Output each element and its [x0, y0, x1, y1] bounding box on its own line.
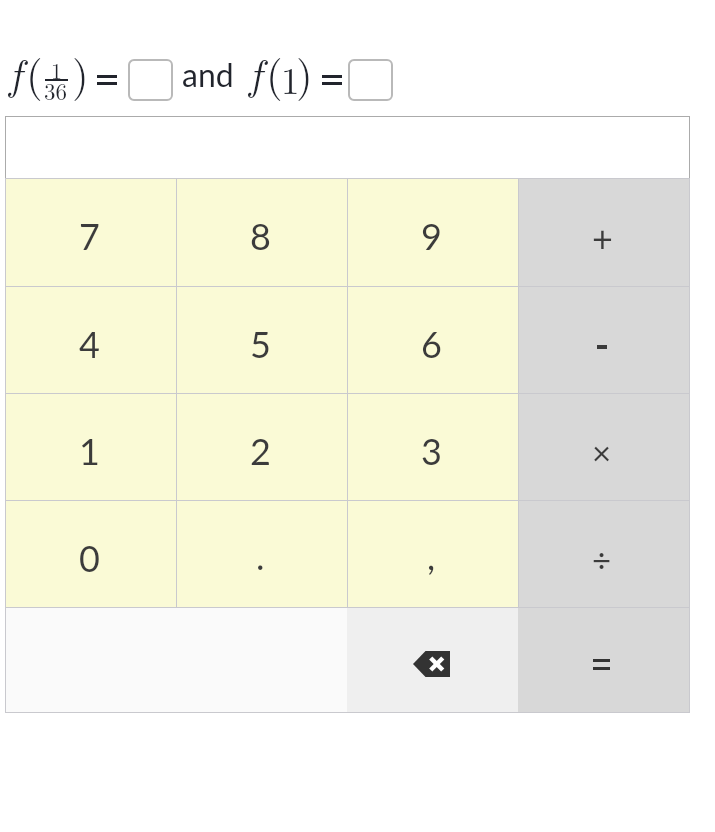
staticText: 7: [79, 214, 100, 257]
staticText: ): [296, 42, 313, 103]
staticText: 1: [281, 52, 300, 104]
staticText: 3: [421, 429, 442, 472]
staticText: 9: [421, 214, 442, 257]
staticText: 5: [250, 322, 271, 365]
button[interactable]: 8: [177, 179, 347, 286]
button[interactable]: 1: [6, 394, 176, 500]
button[interactable]: [518, 608, 689, 712]
button[interactable]: +: [519, 179, 689, 286]
button[interactable]: 3: [348, 394, 518, 500]
staticText: f: [9, 42, 22, 101]
staticText: 2: [250, 429, 271, 472]
staticText: 1: [79, 429, 100, 472]
staticText: and: [182, 55, 234, 93]
staticText: 8: [250, 214, 271, 257]
staticText: (: [266, 42, 283, 103]
staticText: 36: [44, 74, 67, 107]
button[interactable]: 5: [177, 287, 347, 393]
button[interactable]: 0: [6, 501, 176, 607]
staticText: ×: [592, 432, 612, 472]
button[interactable]: ,: [348, 501, 518, 607]
staticText: f: [249, 42, 262, 101]
button[interactable]: .: [177, 501, 347, 607]
staticText: (: [26, 42, 43, 103]
staticText: 0: [79, 536, 100, 579]
button[interactable]: [348, 59, 393, 101]
button[interactable]: 9: [348, 179, 518, 286]
button[interactable]: [347, 608, 518, 712]
button[interactable]: [5, 116, 690, 179]
staticText: ÷: [592, 539, 612, 579]
button[interactable]: [128, 59, 173, 101]
button[interactable]: 2: [177, 394, 347, 500]
button[interactable]: 7: [6, 179, 176, 286]
button[interactable]: ×: [519, 394, 689, 500]
staticText: 6: [421, 322, 442, 365]
staticText: 1: [51, 54, 63, 85]
button[interactable]: 4: [6, 287, 176, 393]
staticText: .: [256, 534, 265, 577]
button[interactable]: ÷: [519, 501, 689, 607]
staticText: 4: [79, 322, 100, 365]
staticText: ): [72, 42, 89, 103]
button[interactable]: 6: [348, 287, 518, 393]
button[interactable]: [519, 287, 689, 393]
staticText: +: [592, 216, 613, 259]
staticText: ,: [427, 534, 436, 577]
